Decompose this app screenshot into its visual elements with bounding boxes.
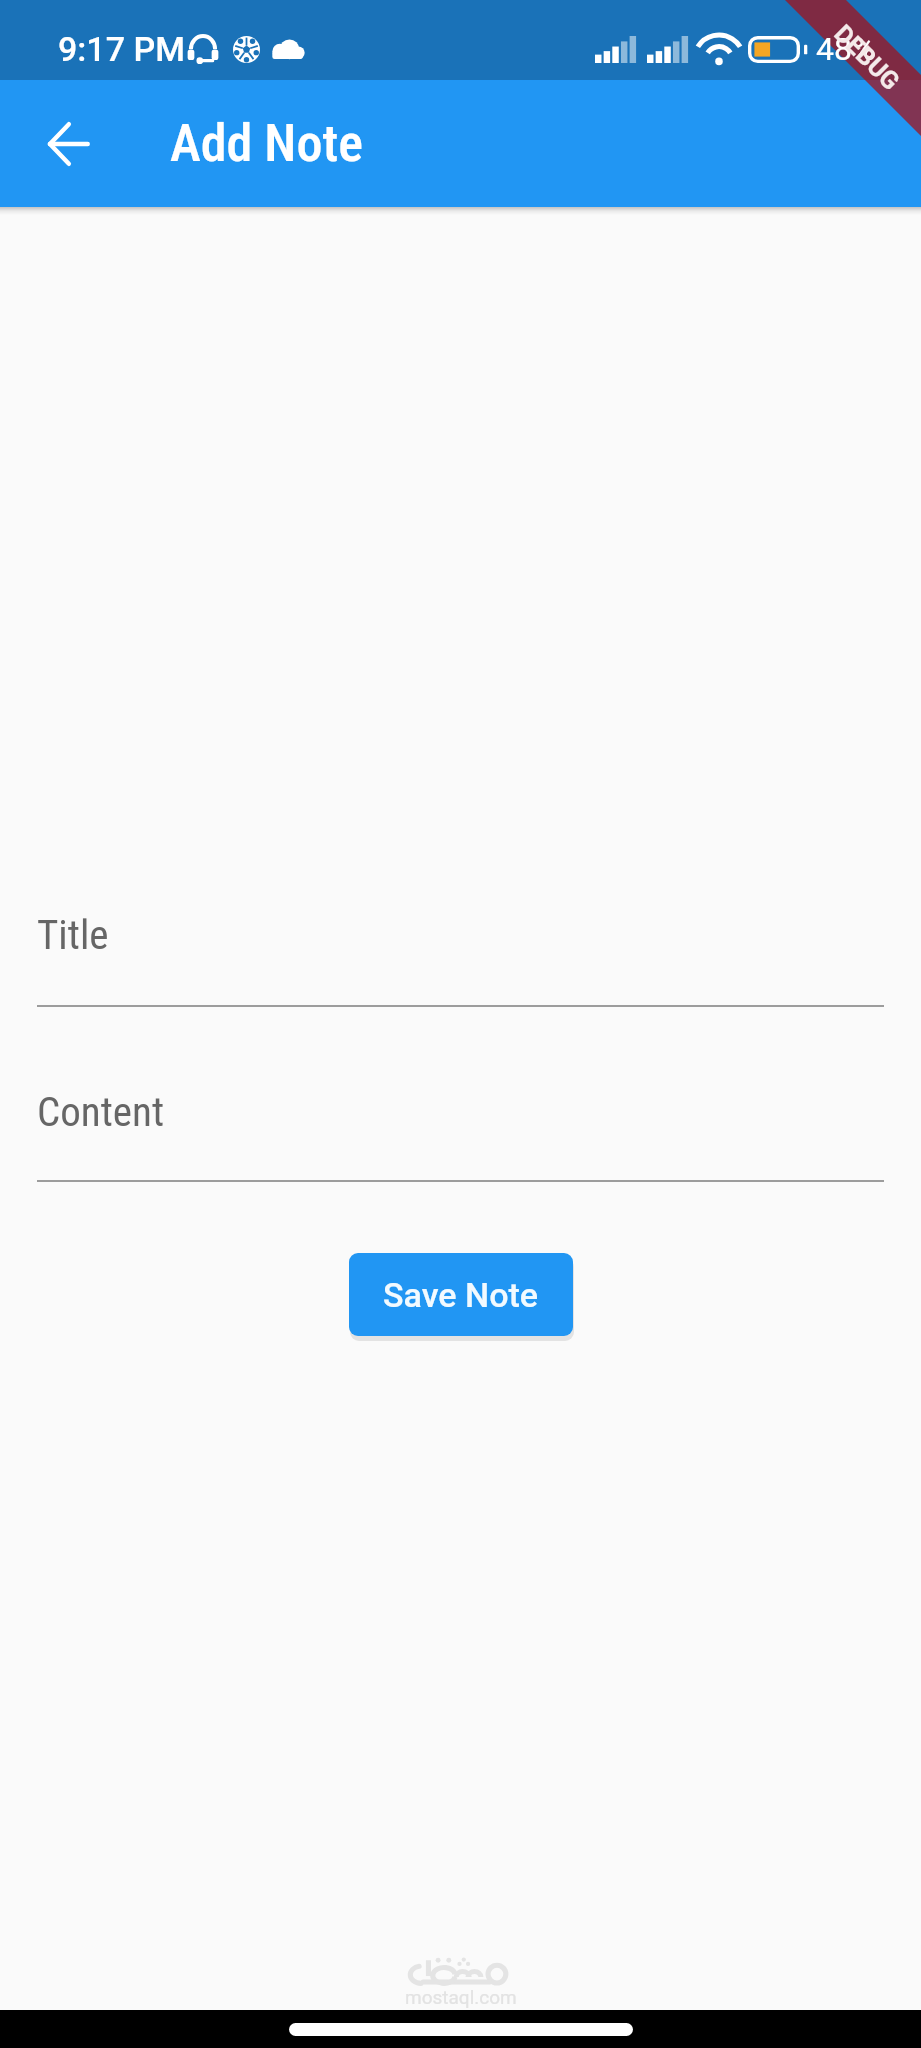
staticText: Save Note: [383, 1275, 539, 1315]
button[interactable]: Save Note: [349, 1253, 573, 1336]
button[interactable]: Title: [37, 905, 884, 1007]
staticText: 48%: [816, 30, 876, 68]
staticText: 9:17 PM: [58, 29, 185, 69]
staticText: Content: [37, 1088, 165, 1136]
staticText: DEBUG: [828, 19, 906, 96]
button[interactable]: Back: [30, 106, 106, 182]
staticText: Title: [37, 911, 109, 959]
button[interactable]: Content: [37, 1082, 884, 1182]
staticText: mostaql.com: [405, 1986, 517, 2008]
staticText: Add Note: [170, 113, 363, 174]
